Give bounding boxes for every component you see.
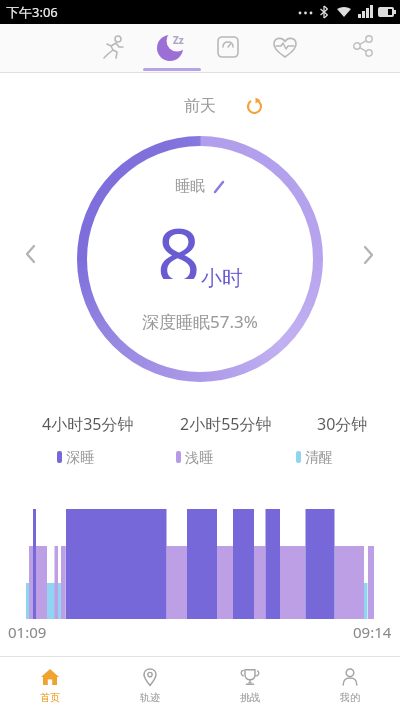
staticText: 8 [157, 203, 201, 279]
staticText: 挑战 [240, 691, 260, 704]
button[interactable]: 我的 [300, 657, 400, 712]
staticText: 下午3:06 [6, 3, 58, 21]
staticText: 睡眠 [175, 177, 205, 196]
staticText: 前天 [184, 96, 216, 116]
button[interactable]: 挑战 [200, 657, 300, 712]
button[interactable]: Zz [155, 31, 187, 63]
button[interactable] [24, 244, 36, 264]
staticText: Zz [173, 33, 184, 47]
staticText: 4小时35分钟 [42, 413, 134, 433]
staticText: 清醒 [305, 449, 333, 465]
staticText: 首页 [40, 691, 60, 704]
button[interactable] [246, 97, 264, 115]
staticText: 30分钟 [317, 413, 368, 433]
staticText: 我的 [340, 691, 360, 704]
staticText: 深睡 [66, 449, 94, 465]
staticText: 01:09 [8, 622, 47, 642]
staticText: 轨迹 [140, 691, 160, 704]
staticText: 2小时55分钟 [180, 413, 272, 433]
staticText: 浅睡 [185, 449, 213, 465]
button[interactable]: 前天 [120, 95, 280, 117]
button[interactable] [271, 34, 299, 60]
button[interactable] [363, 245, 375, 265]
staticText: 小时 [201, 265, 243, 291]
staticText: 09:14 [353, 622, 392, 642]
button[interactable]: 轨迹 [100, 657, 200, 712]
staticText: 深度睡眠57.3% [142, 310, 258, 330]
button[interactable] [215, 34, 241, 60]
button[interactable]: 首页 [0, 657, 100, 712]
button[interactable] [100, 33, 128, 61]
button[interactable] [352, 34, 376, 58]
